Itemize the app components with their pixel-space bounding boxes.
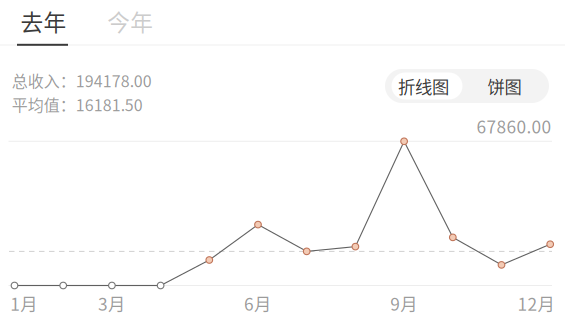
- staticText: 67860.00: [476, 113, 551, 138]
- button[interactable]: 去年: [20, 0, 84, 43]
- staticText: 饼图: [487, 73, 521, 99]
- staticText: 6月: [244, 291, 271, 316]
- staticText: 1月: [10, 291, 37, 316]
- button[interactable]: 折线图: [391, 72, 462, 99]
- button[interactable]: 饼图: [469, 72, 540, 99]
- staticText: 12月: [517, 291, 554, 316]
- staticText: 平均值：16181.50: [12, 93, 143, 116]
- staticText: 9月: [390, 291, 417, 316]
- staticText: 总收入：194178.00: [12, 69, 152, 92]
- staticText: 3月: [98, 291, 125, 316]
- staticText: 今年: [107, 5, 153, 37]
- staticText: 折线图: [398, 73, 449, 99]
- button[interactable]: 今年: [107, 0, 171, 43]
- staticText: 去年: [20, 5, 66, 37]
